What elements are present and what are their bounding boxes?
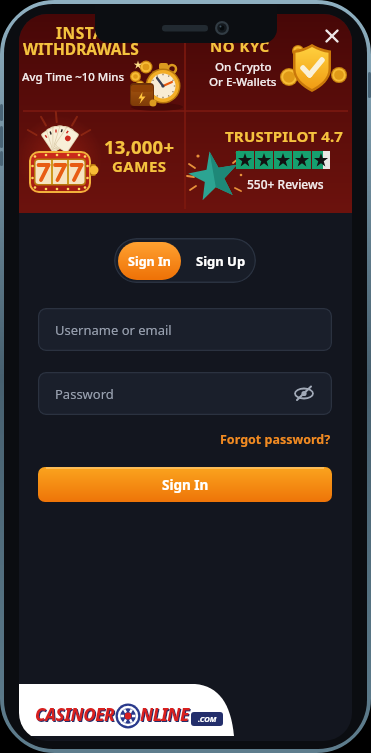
- button[interactable]: Password: [38, 372, 332, 415]
- staticText: On Crypto: [215, 59, 272, 75]
- staticText: WITHDRAWALS: [23, 38, 139, 59]
- button[interactable]: Username or email: [38, 308, 332, 351]
- staticText: CASINOER: [35, 703, 115, 726]
- staticText: Forgot password?: [220, 431, 331, 448]
- staticText: 550+ Reviews: [247, 176, 324, 192]
- staticText: Avg Time ~10 Mins: [22, 69, 124, 85]
- staticText: CASINOER: [36, 704, 116, 727]
- staticText: NO KYC: [210, 36, 270, 56]
- staticText: Username or email: [55, 321, 172, 339]
- staticText: Sign In: [128, 253, 171, 270]
- button[interactable]: Sign In: [118, 242, 181, 280]
- button[interactable]: Sign Up: [185, 238, 256, 283]
- staticText: 13,000+: [104, 134, 175, 159]
- staticText: Password: [55, 385, 114, 403]
- staticText: Or E-Wallets: [209, 74, 277, 90]
- staticText: TRUSTPILOT 4.7: [225, 126, 344, 146]
- staticText: NLINE: [140, 703, 189, 726]
- button[interactable]: Forgot password?: [211, 429, 331, 449]
- staticText: NLINE: [141, 704, 190, 727]
- staticText: Sign Up: [196, 252, 246, 270]
- button[interactable]: Sign In: [38, 467, 332, 502]
- staticText: .COM: [198, 714, 217, 724]
- staticText: GAMES: [112, 156, 167, 176]
- button[interactable]: [324, 28, 340, 44]
- staticText: INSTA: [56, 22, 105, 43]
- button[interactable]: [19, 674, 249, 741]
- staticText: Sign In: [162, 476, 209, 494]
